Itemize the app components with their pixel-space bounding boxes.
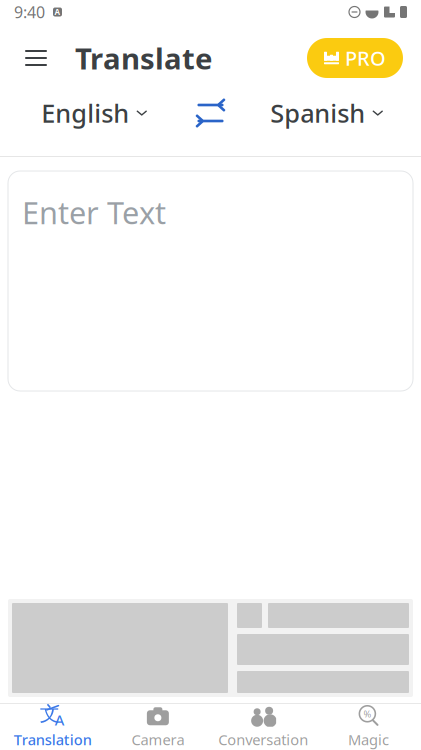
button[interactable]: Menu [16,38,56,78]
staticText: Camera [131,730,184,749]
staticText: Enter Text [22,192,166,233]
staticText: A [55,710,65,729]
button[interactable]: English [31,91,157,135]
button[interactable]: Conversation [210,704,316,750]
staticText: English [41,96,129,130]
staticText: Conversation [218,730,308,749]
button[interactable]: % [316,704,421,750]
staticText: PRO [345,45,386,71]
button[interactable]: 文 [0,704,105,750]
staticText: % [363,708,371,720]
staticText: Translate [75,38,213,77]
staticText: Spanish [270,96,365,130]
button[interactable]: Enter Text [8,171,413,391]
button[interactable]: Swap languages [182,91,238,135]
button[interactable]: Spanish [260,91,393,135]
staticText: Magic [348,730,389,749]
staticText: Translation [14,730,92,749]
button[interactable]: PRO [307,38,403,78]
staticText: A [54,7,60,17]
staticText: 9:40 [14,1,45,23]
button[interactable]: Camera [105,704,210,750]
staticText: 文 [40,701,60,726]
